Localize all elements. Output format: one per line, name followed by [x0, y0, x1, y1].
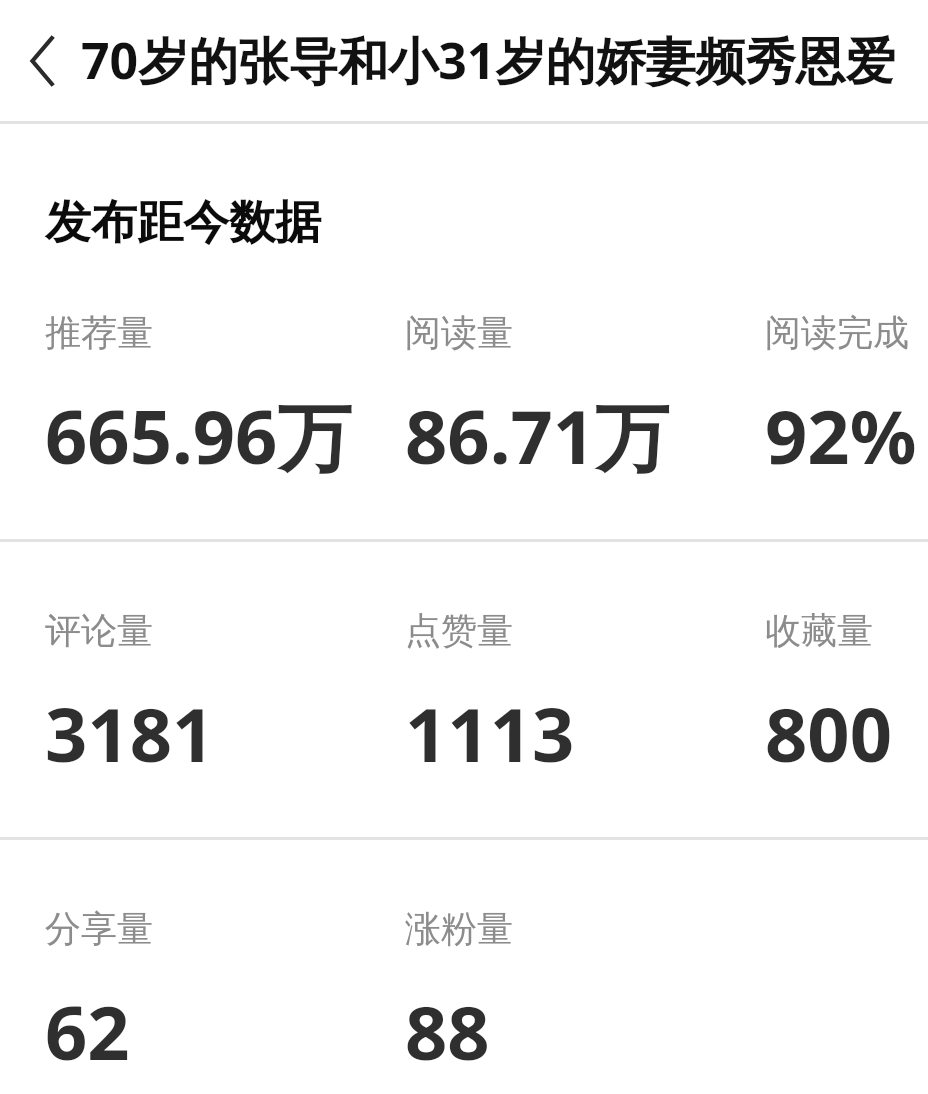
staticText: 62	[45, 981, 130, 1082]
staticText: 70岁的张导和小31岁的娇妻频秀恩爱	[81, 26, 896, 94]
staticText: 阅读完成率	[765, 310, 928, 355]
staticText: 评论量	[45, 608, 153, 653]
button[interactable]: Back	[19, 33, 67, 89]
staticText: 发布距今数据	[45, 194, 321, 252]
staticText: 1113	[405, 683, 575, 784]
staticText: 点赞量	[405, 608, 513, 653]
staticText: 涨粉量	[405, 906, 513, 951]
staticText: 收藏量	[765, 608, 873, 653]
staticText: 推荐量	[45, 310, 153, 355]
staticText: 3181	[45, 683, 215, 784]
staticText: 86.71万	[405, 385, 670, 486]
staticText: 92%	[765, 385, 917, 486]
staticText: 分享量	[45, 906, 153, 951]
staticText: 88	[405, 981, 490, 1082]
staticText: 800	[765, 683, 892, 784]
staticText: 阅读量	[405, 310, 513, 355]
staticText: 665.96万	[45, 385, 352, 486]
